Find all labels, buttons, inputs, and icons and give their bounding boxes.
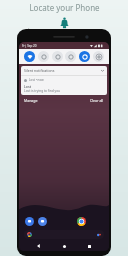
- button[interactable]: Quick setting 3: [65, 51, 76, 62]
- button[interactable]: Quick setting 0: [24, 51, 35, 62]
- button[interactable]: Chrome: [77, 217, 86, 226]
- button[interactable]: Back: [34, 241, 44, 251]
- button[interactable]: Phone: [25, 217, 34, 226]
- staticText: Lost • now: [29, 78, 44, 82]
- button[interactable]: [24, 230, 104, 239]
- staticText: Fri, Sep 20: [22, 44, 37, 48]
- button[interactable]: Quick setting 4: [79, 51, 90, 62]
- button[interactable]: Silent notifications: [21, 66, 107, 75]
- staticText: Lost is trying to find you: [24, 89, 61, 93]
- button[interactable]: Lost • now: [21, 76, 107, 95]
- button[interactable]: Messages: [38, 217, 47, 226]
- staticText: Clear all: [90, 98, 104, 103]
- button[interactable]: Quick setting 1: [38, 51, 49, 62]
- staticText: Silent notifications: [24, 68, 55, 73]
- staticText: Locate your Phone: [29, 2, 100, 13]
- button[interactable]: Manage: [23, 97, 39, 104]
- button[interactable]: Recents: [84, 241, 94, 251]
- button[interactable]: Clear all: [89, 97, 105, 104]
- button[interactable]: Ring phone: [58, 17, 71, 30]
- button[interactable]: Quick setting 5: [93, 51, 104, 62]
- staticText: Lost: [24, 84, 32, 89]
- staticText: Manage: [24, 98, 38, 103]
- button[interactable]: Home: [59, 241, 69, 251]
- button[interactable]: Quick setting 2: [52, 51, 63, 62]
